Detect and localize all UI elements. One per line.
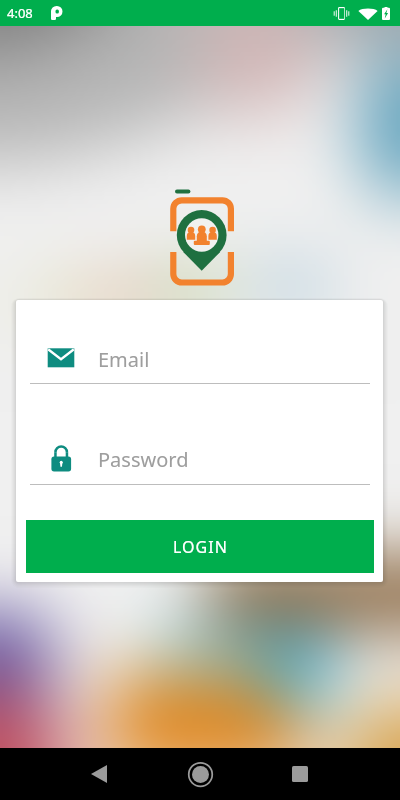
button[interactable]: LOGIN [26,520,374,573]
button[interactable]: Recents [276,748,324,800]
staticText: LOGIN [173,536,228,558]
staticText: Password [98,446,189,473]
staticText: 4:08 [7,4,33,22]
button[interactable]: Email [16,340,383,384]
staticText: Email [98,346,150,373]
button[interactable]: Back [75,748,123,800]
button[interactable]: Home [176,748,224,800]
button[interactable]: Password [16,440,383,485]
